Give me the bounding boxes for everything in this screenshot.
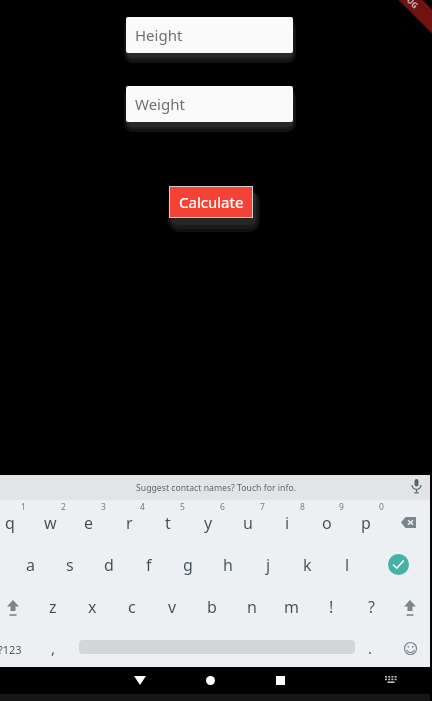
button[interactable] [401, 517, 416, 528]
button[interactable] [404, 642, 417, 655]
staticText: m [284, 596, 299, 618]
staticText: l [345, 554, 350, 576]
staticText: z [49, 596, 57, 618]
staticText: x [88, 596, 97, 618]
staticText: u [243, 512, 253, 534]
staticText: w [44, 512, 57, 534]
staticText: 6 [220, 501, 225, 513]
staticText: j [266, 554, 271, 576]
button[interactable] [6, 600, 20, 617]
staticText: ? [368, 596, 375, 618]
staticText: Calculate [179, 192, 244, 212]
staticText: r [126, 512, 133, 534]
staticText: g [183, 554, 193, 576]
staticText: 4 [140, 501, 145, 513]
button[interactable] [403, 600, 417, 617]
staticText: Suggest contact names? Touch for info. [136, 482, 297, 494]
staticText: s [66, 554, 74, 576]
staticText: o [322, 512, 332, 534]
staticText: c [128, 596, 136, 618]
button[interactable]: Weight [126, 86, 293, 122]
staticText: 1 [21, 501, 26, 513]
staticText: ?123 [0, 642, 22, 657]
button[interactable]: Suggest contact names? Touch for info. [0, 475, 432, 500]
staticText: Weight [135, 94, 185, 114]
staticText: 9 [339, 501, 344, 513]
staticText: DEBUG [394, 0, 421, 11]
staticText: v [168, 596, 177, 618]
staticText: q [5, 512, 15, 534]
button[interactable] [134, 676, 146, 685]
button[interactable]: Calculate [169, 186, 253, 218]
staticText: a [26, 554, 35, 576]
staticText: t [165, 512, 171, 534]
staticText: b [207, 596, 217, 618]
button[interactable] [385, 676, 397, 685]
staticText: h [223, 554, 233, 576]
staticText: d [104, 554, 114, 576]
button[interactable] [388, 554, 409, 575]
staticText: , [51, 638, 56, 658]
staticText: 3 [101, 501, 106, 513]
button[interactable] [206, 676, 215, 685]
staticText: ! [329, 596, 334, 618]
button[interactable]: Height [126, 17, 293, 53]
staticText: y [204, 512, 213, 534]
staticText: k [303, 554, 312, 576]
staticText: Height [135, 25, 183, 45]
staticText: 0 [379, 501, 384, 513]
staticText: e [84, 512, 94, 534]
staticText: f [146, 554, 152, 576]
staticText: . [368, 638, 373, 658]
staticText: 8 [300, 501, 305, 513]
staticText: p [361, 512, 371, 534]
staticText: n [247, 596, 257, 618]
staticText: 7 [260, 501, 265, 513]
staticText: 5 [180, 501, 185, 513]
staticText: i [285, 512, 290, 534]
staticText: 2 [61, 501, 66, 513]
